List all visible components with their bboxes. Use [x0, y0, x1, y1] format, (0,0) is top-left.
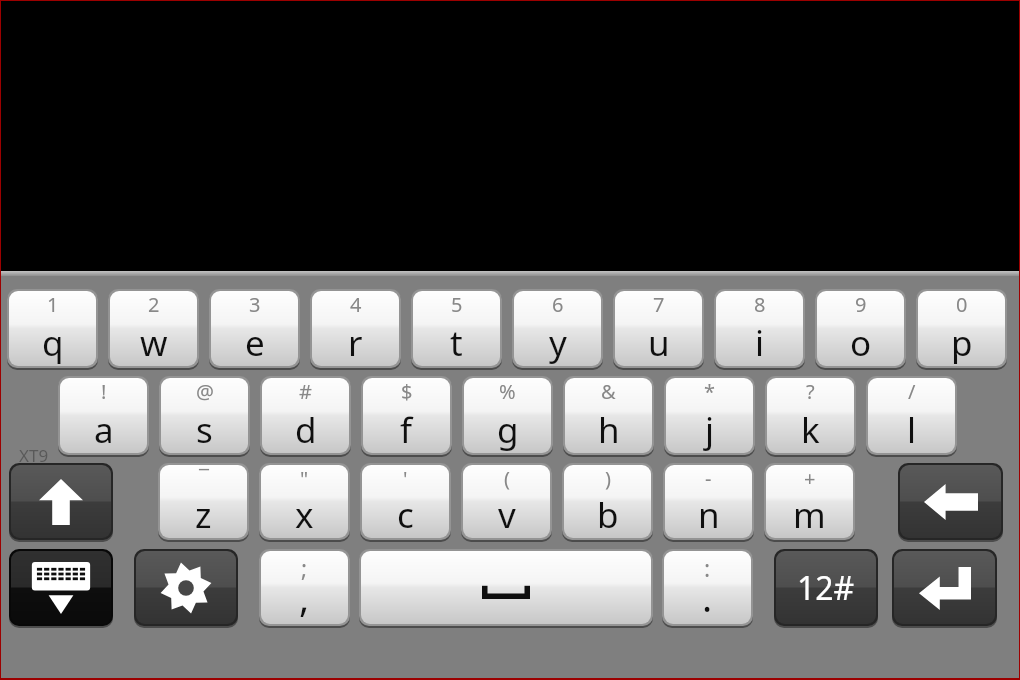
button[interactable]: c	[360, 461, 451, 541]
staticText: j	[705, 406, 715, 453]
button[interactable]: e	[209, 287, 300, 369]
staticText: p	[951, 319, 973, 366]
button[interactable]: y	[512, 287, 603, 369]
staticText: ¯	[199, 465, 209, 492]
staticText: 12#	[797, 566, 855, 610]
staticText: (	[504, 465, 510, 492]
staticText: '	[403, 465, 408, 492]
staticText: /	[908, 378, 916, 405]
button[interactable]: j	[664, 374, 755, 456]
button[interactable]: k	[765, 374, 856, 456]
staticText: k	[801, 406, 820, 453]
button[interactable]: z	[158, 461, 249, 541]
button[interactable]: p	[916, 287, 1007, 369]
staticText: a	[94, 406, 114, 453]
staticText: .	[702, 571, 713, 623]
staticText: w	[140, 319, 168, 366]
staticText: 7	[653, 291, 665, 318]
button[interactable]: i	[714, 287, 805, 369]
staticText: 5	[451, 291, 463, 318]
button[interactable]: t	[411, 287, 502, 369]
staticText: v	[498, 491, 516, 538]
staticText: r	[348, 319, 363, 366]
staticText: x	[295, 491, 314, 538]
button[interactable]: h	[563, 374, 654, 456]
button[interactable]: Numbers and symbols	[774, 547, 878, 627]
staticText: t	[450, 319, 463, 366]
button[interactable]: ; ,	[259, 547, 350, 627]
staticText: 9	[855, 291, 867, 318]
button[interactable]: v	[461, 461, 552, 541]
staticText: z	[195, 491, 212, 538]
staticText: e	[245, 319, 265, 366]
button[interactable]: r	[310, 287, 401, 369]
staticText: ?	[806, 378, 815, 405]
button[interactable]: s	[159, 374, 250, 456]
button[interactable]: l	[866, 374, 957, 456]
staticText: -	[705, 465, 712, 492]
staticText: ;	[301, 552, 308, 583]
staticText: m	[793, 491, 826, 538]
staticText: "	[300, 465, 309, 492]
staticText: 2	[148, 291, 160, 318]
button[interactable]: u	[613, 287, 704, 369]
button[interactable]: Backspace	[898, 461, 1003, 541]
staticText: %	[499, 378, 516, 405]
staticText: f	[400, 406, 413, 453]
staticText: 0	[956, 291, 968, 318]
staticText: n	[698, 491, 720, 538]
button[interactable]: Settings	[134, 547, 238, 627]
button[interactable]: f	[361, 374, 452, 456]
staticText: c	[397, 491, 414, 538]
staticText: 8	[754, 291, 766, 318]
staticText: i	[755, 319, 765, 366]
button[interactable]: d	[260, 374, 351, 456]
staticText: b	[597, 491, 619, 538]
button[interactable]: m	[764, 461, 855, 541]
button[interactable]: n	[663, 461, 754, 541]
staticText: h	[598, 406, 620, 453]
staticText: l	[907, 406, 917, 453]
staticText: )	[605, 465, 611, 492]
button[interactable]: q	[7, 287, 98, 369]
button[interactable]: x	[259, 461, 350, 541]
button[interactable]: g	[462, 374, 553, 456]
button[interactable]: o	[815, 287, 906, 369]
button[interactable]: Space	[359, 547, 653, 627]
staticText: *	[704, 378, 716, 405]
staticText: @	[196, 378, 214, 405]
staticText: +	[804, 465, 816, 492]
staticText: s	[196, 406, 213, 453]
staticText: &	[601, 378, 616, 405]
staticText: ,	[299, 571, 310, 623]
button[interactable]: Hide keyboard	[9, 547, 113, 627]
staticText: XT9	[19, 444, 49, 467]
staticText: u	[648, 319, 670, 366]
staticText: y	[549, 319, 567, 366]
staticText: #	[299, 378, 312, 405]
staticText: 4	[350, 291, 362, 318]
button[interactable]: w	[108, 287, 199, 369]
staticText: 3	[249, 291, 261, 318]
staticText: d	[295, 406, 317, 453]
staticText: 1	[47, 291, 59, 318]
staticText: !	[101, 378, 107, 405]
button[interactable]: Shift	[9, 461, 113, 541]
staticText: :	[704, 552, 711, 583]
staticText: g	[497, 406, 519, 453]
staticText: 6	[552, 291, 564, 318]
staticText: q	[42, 319, 64, 366]
button[interactable]: : .	[662, 547, 753, 627]
staticText: o	[850, 319, 872, 366]
button[interactable]: Enter	[892, 547, 997, 627]
staticText: $	[401, 378, 413, 405]
button[interactable]: b	[562, 461, 653, 541]
button[interactable]: a	[58, 374, 149, 456]
